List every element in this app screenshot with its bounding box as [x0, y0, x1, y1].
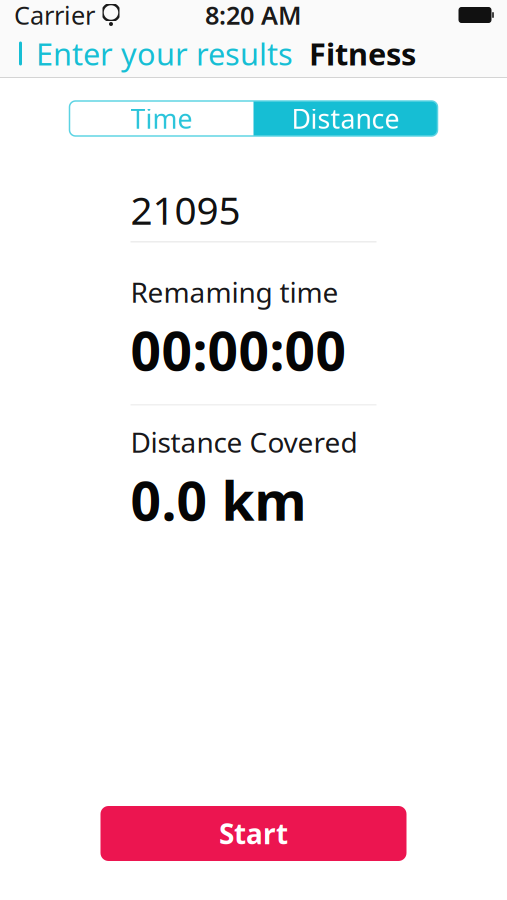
staticText: Distance Covered	[130, 423, 357, 461]
staticText: 8:20 AM	[205, 0, 302, 32]
button[interactable]: Time	[69, 101, 253, 136]
button[interactable]: Start	[100, 806, 406, 861]
staticText: Distance	[291, 101, 399, 136]
button[interactable]: Enter your results	[0, 25, 293, 82]
button[interactable]: Distance	[253, 101, 437, 136]
staticText: Enter your results	[36, 33, 293, 74]
staticText: 21095	[130, 184, 240, 235]
staticText: Carrier	[14, 0, 95, 32]
staticText: 0.0 km	[130, 464, 306, 535]
staticText: 00:00:00	[130, 314, 346, 385]
staticText: Fitness	[309, 33, 416, 74]
staticText: Start	[219, 815, 288, 852]
staticText: Time	[130, 101, 192, 136]
staticText: Remaming time	[130, 273, 338, 310]
